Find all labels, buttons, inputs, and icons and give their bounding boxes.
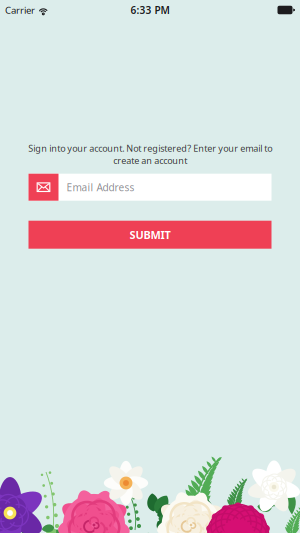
staticText: Email Address xyxy=(66,180,134,194)
staticText: 6:33 PM xyxy=(130,3,169,17)
button[interactable]: SUBMIT xyxy=(28,221,271,249)
staticText: SUBMIT xyxy=(129,227,170,242)
staticText: Carrier xyxy=(5,3,35,17)
staticText: Sign into your account. Not registered? … xyxy=(28,142,272,167)
